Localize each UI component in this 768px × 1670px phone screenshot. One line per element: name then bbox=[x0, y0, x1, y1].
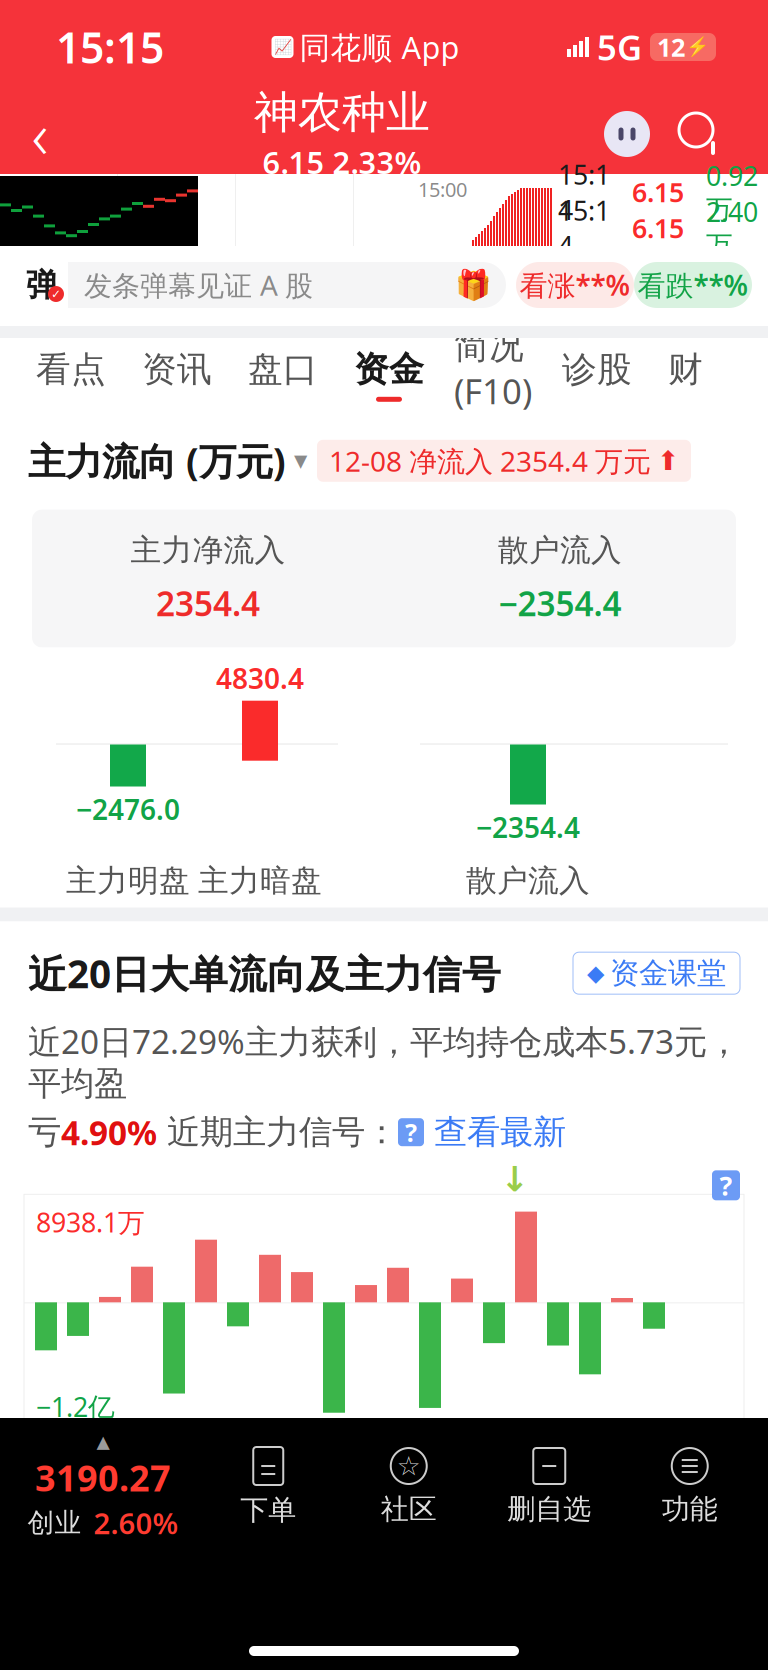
staticText: ▲ bbox=[96, 1432, 109, 1452]
staticText: 📈 bbox=[273, 39, 291, 55]
button[interactable]: 资金 bbox=[336, 338, 442, 412]
staticText: 主力暗盘 bbox=[198, 862, 322, 899]
staticText: 资金课堂 bbox=[610, 955, 726, 991]
staticText: −2476.0 bbox=[76, 790, 180, 828]
staticText: 主力流向 (万元) bbox=[28, 436, 286, 486]
staticText: 近期主力信号： bbox=[157, 1112, 398, 1153]
staticText: 功能 bbox=[662, 1492, 718, 1526]
staticText: ⚡ bbox=[686, 36, 709, 58]
staticText: 简况(F10) bbox=[454, 325, 532, 414]
staticText: 神农种业 bbox=[254, 86, 430, 140]
staticText: 同花顺 App bbox=[299, 27, 459, 67]
staticText: 看点 bbox=[36, 348, 106, 391]
staticText: 8938.1万 bbox=[36, 1204, 145, 1240]
button[interactable]: ☆ bbox=[338, 1448, 479, 1526]
staticText: 弹 bbox=[26, 265, 58, 305]
staticText: 6.15 bbox=[632, 210, 684, 246]
button[interactable]: 看点 bbox=[18, 338, 124, 412]
staticText: 🎁 bbox=[455, 268, 492, 302]
staticText: 2354.4 bbox=[156, 581, 260, 625]
button[interactable]: Search bbox=[672, 106, 728, 162]
button[interactable]: ▲ bbox=[8, 1432, 198, 1542]
staticText: ↑ bbox=[398, 1474, 427, 1513]
staticText: 12−08 bbox=[669, 1438, 744, 1474]
staticText: 社区 bbox=[381, 1492, 437, 1526]
staticText: 诊股 bbox=[562, 348, 632, 391]
button[interactable]: 查看最新 bbox=[424, 1112, 566, 1153]
button[interactable]: AI assistant bbox=[604, 111, 650, 157]
staticText: 5G bbox=[597, 24, 642, 70]
button[interactable]: 诊股 bbox=[544, 338, 650, 412]
staticText: 12-08 净流入 2354.4 万元 bbox=[329, 442, 651, 479]
button[interactable]: 删自选 bbox=[479, 1448, 619, 1526]
staticText: 删自选 bbox=[507, 1492, 591, 1526]
staticText: 4830.4 bbox=[216, 659, 304, 697]
staticText: 3190.27 bbox=[35, 1454, 171, 1501]
staticText: 主力明盘 bbox=[66, 862, 190, 899]
staticText: 查看最新 bbox=[424, 1112, 566, 1153]
button[interactable]: 资讯 bbox=[124, 338, 230, 412]
button[interactable]: 简况(F10) bbox=[442, 338, 544, 412]
staticText: 下单 bbox=[240, 1493, 296, 1527]
button[interactable]: 功能 bbox=[619, 1448, 760, 1526]
staticText: 15:15 bbox=[56, 19, 164, 75]
staticText: 近20日大单流向及主力信号 bbox=[28, 947, 501, 999]
staticText: ? bbox=[719, 1168, 732, 1203]
staticText: ✓ bbox=[51, 287, 61, 301]
button[interactable]: Back bbox=[0, 99, 80, 169]
staticText: 财 bbox=[668, 348, 703, 391]
staticText: 看涨**% bbox=[519, 266, 630, 304]
staticText: 散户流入 bbox=[498, 532, 622, 569]
staticText: ◆ bbox=[587, 960, 604, 986]
staticText: 15:00 bbox=[418, 176, 467, 203]
button[interactable]: 弹 bbox=[16, 262, 506, 308]
staticText: ☆ bbox=[397, 1451, 421, 1481]
staticText: ⬆ bbox=[657, 446, 679, 476]
button[interactable]: 财 bbox=[650, 338, 721, 412]
staticText: 12 bbox=[657, 30, 685, 64]
staticText: 主力净流入 bbox=[130, 532, 285, 569]
staticText: 0.92万 bbox=[706, 158, 758, 226]
staticText: 11−11 bbox=[24, 1438, 99, 1474]
staticText: ‹ bbox=[31, 91, 48, 176]
button[interactable]: 主力流向 (万元) bbox=[28, 436, 307, 486]
button[interactable]: 看涨**% bbox=[516, 262, 634, 308]
staticText: −2354.4 bbox=[476, 808, 580, 846]
staticText: −2354.4 bbox=[498, 581, 621, 625]
staticText: 资金 bbox=[354, 348, 424, 391]
staticText: ↓ bbox=[500, 1160, 529, 1199]
staticText: −1.2亿 bbox=[36, 1389, 115, 1424]
staticText: 4.90% bbox=[61, 1110, 157, 1154]
staticText: 15:14 bbox=[558, 157, 610, 227]
staticText: 近20日72.29%主力获利，平均持仓成本5.73元，平均盈 bbox=[28, 1019, 740, 1104]
staticText: 发条弹幕见证 A 股 bbox=[84, 266, 313, 304]
staticText: 散户流入 bbox=[466, 862, 590, 899]
staticText: 资讯 bbox=[142, 348, 212, 391]
staticText: 创业 bbox=[27, 1507, 81, 1539]
staticText: ? bbox=[405, 1115, 417, 1149]
button[interactable]: Help bbox=[712, 1170, 740, 1200]
staticText: 2.40万 bbox=[706, 194, 758, 262]
staticText: 6.15 bbox=[632, 174, 684, 210]
button[interactable]: ◆ bbox=[573, 952, 740, 994]
staticText: 盘口 bbox=[248, 348, 318, 391]
staticText: 6.15 2.33% bbox=[262, 142, 421, 182]
button[interactable]: 下单 bbox=[198, 1447, 338, 1527]
staticText: 15:14 bbox=[558, 193, 610, 263]
button[interactable]: 看跌**% bbox=[634, 262, 752, 308]
staticText: 看跌**% bbox=[637, 266, 748, 304]
button[interactable]: 盘口 bbox=[230, 338, 336, 412]
staticText: ▼ bbox=[294, 451, 307, 471]
staticText: 2.60% bbox=[93, 1503, 178, 1542]
staticText: 亏 bbox=[28, 1112, 61, 1153]
